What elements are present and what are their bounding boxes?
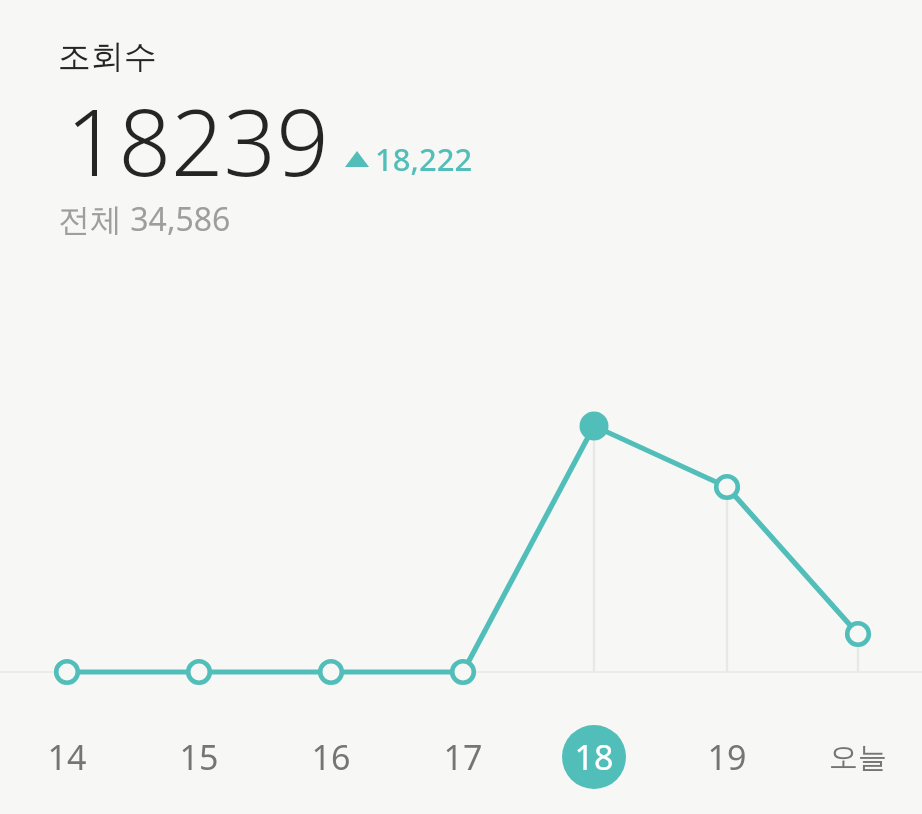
button[interactable]: Views chart: [0, 0, 922, 814]
